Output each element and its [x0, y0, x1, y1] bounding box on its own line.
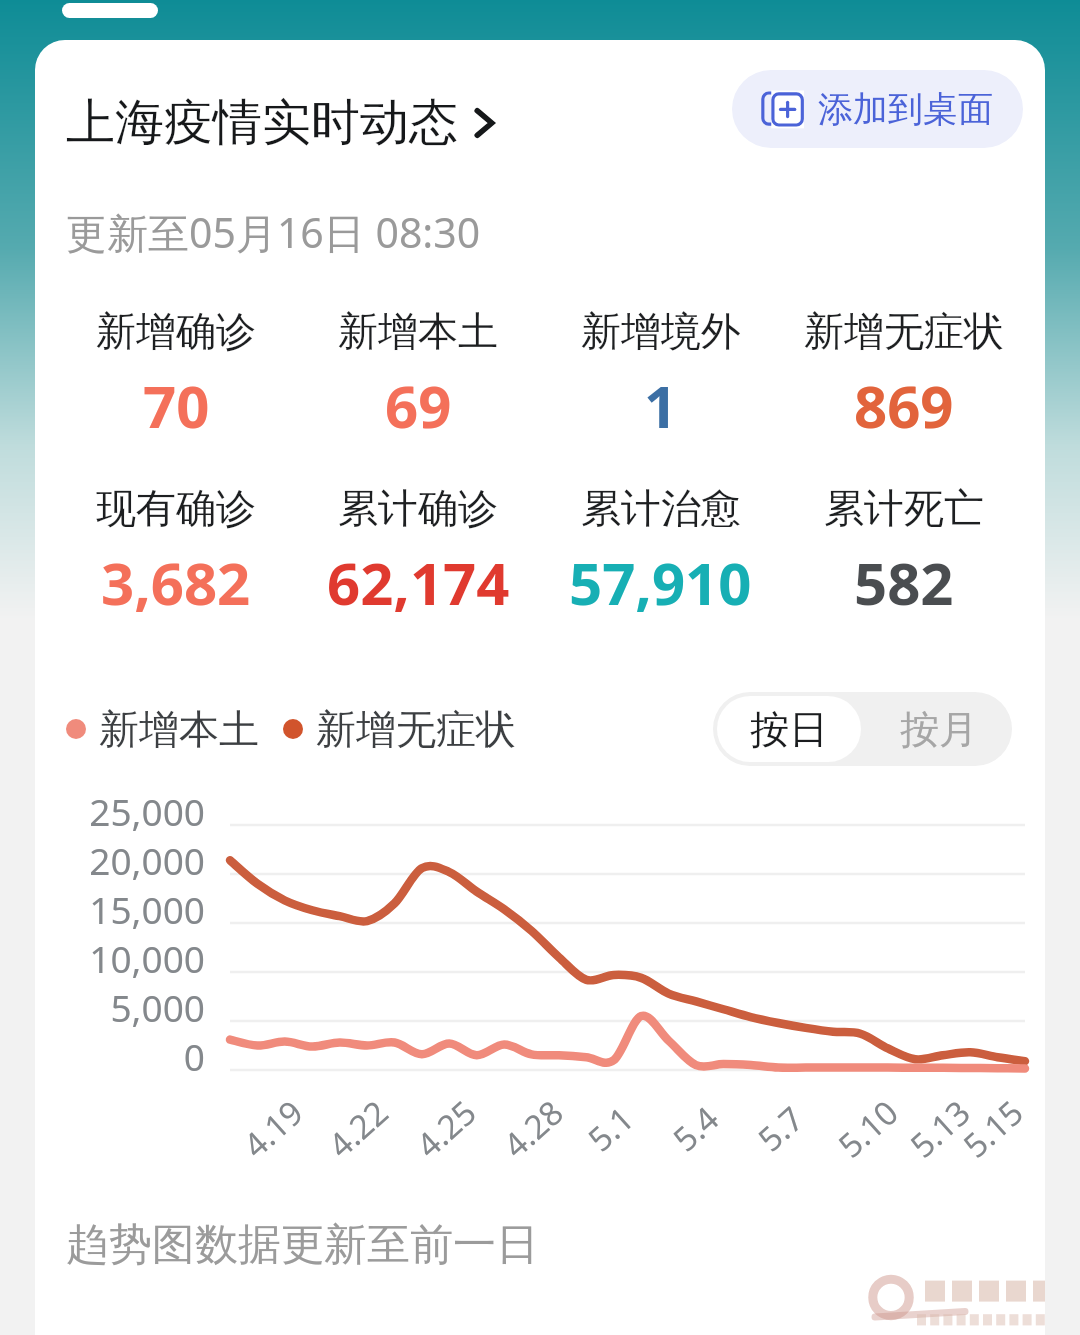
staticText: 现有确诊 — [96, 483, 256, 533]
button[interactable]: 现有确诊 — [55, 483, 297, 622]
staticText: 5.7 — [748, 1096, 813, 1161]
staticText: 5.13 — [900, 1090, 980, 1167]
staticText: 5.1 — [578, 1096, 643, 1161]
button[interactable]: 新增本土 — [297, 306, 539, 445]
staticText: 70 — [143, 366, 210, 445]
staticText: 15,000 — [89, 884, 205, 933]
staticText: 5.10 — [828, 1090, 908, 1167]
staticText: 5.15 — [953, 1090, 1033, 1167]
staticText: 累计确诊 — [338, 483, 498, 533]
button[interactable]: 累计确诊 — [297, 483, 539, 622]
button[interactable]: 新增境外 — [539, 306, 782, 445]
staticText: 累计治愈 — [581, 483, 741, 533]
staticText: 添加到桌面 — [818, 87, 993, 131]
staticText: 25,000 — [89, 786, 205, 835]
staticText: 上海疫情实时动态 — [66, 92, 458, 154]
button[interactable]: 累计治愈 — [539, 483, 782, 622]
button[interactable]: 按月 — [865, 692, 1012, 766]
staticText: 69 — [385, 366, 452, 445]
staticText: 582 — [854, 543, 954, 622]
staticText: 57,910 — [569, 543, 752, 622]
button[interactable]: 累计死亡 — [782, 483, 1025, 622]
staticText: 4.22 — [318, 1090, 398, 1167]
button[interactable]: 新增无症状 — [782, 306, 1025, 445]
staticText: 0 — [183, 1031, 205, 1080]
staticText: 869 — [854, 366, 954, 445]
staticText: 4.28 — [493, 1090, 573, 1167]
staticText: 新增无症状 — [804, 306, 1004, 356]
staticText: 累计死亡 — [824, 483, 984, 533]
staticText: 新增本土 — [99, 704, 259, 754]
staticText: 新增无症状 — [316, 704, 516, 754]
staticText: 更新至05月16日 08:30 — [66, 204, 481, 260]
staticText: 5,000 — [110, 982, 205, 1031]
staticText: 5.4 — [663, 1096, 728, 1161]
staticText: 4.19 — [233, 1090, 313, 1167]
staticText: 1 — [644, 366, 678, 445]
button[interactable]: 上海疫情实时动态 — [66, 92, 498, 154]
button[interactable]: 新增确诊 — [55, 306, 297, 445]
staticText: 趋势图数据更新至前一日 — [66, 1218, 539, 1272]
staticText: 新增本土 — [338, 306, 498, 356]
staticText: 按月 — [900, 705, 978, 754]
staticText: 10,000 — [89, 933, 205, 982]
staticText: 4.25 — [406, 1090, 486, 1167]
button[interactable]: 添加到桌面 — [732, 70, 1023, 148]
staticText: 20,000 — [89, 835, 205, 884]
button[interactable]: 按日 — [717, 696, 861, 762]
staticText: 新增确诊 — [96, 306, 256, 356]
staticText: 按日 — [750, 705, 828, 754]
staticText: 62,174 — [327, 543, 510, 622]
staticText: 新增境外 — [581, 306, 741, 356]
staticText: 3,682 — [101, 543, 251, 622]
